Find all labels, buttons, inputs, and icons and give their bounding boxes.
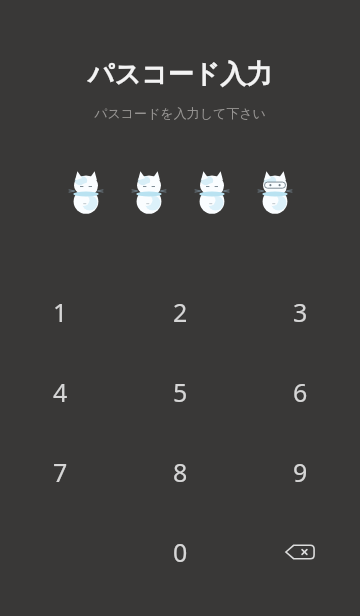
button[interactable]: 1 xyxy=(0,272,120,352)
button[interactable]: 5 xyxy=(120,352,240,432)
button[interactable]: 7 xyxy=(0,432,120,512)
staticText: 5 xyxy=(173,375,188,409)
button[interactable]: 4 xyxy=(0,352,120,432)
staticText: パスコード入力 xyxy=(0,58,360,91)
staticText: 0 xyxy=(173,535,188,569)
staticText: 7 xyxy=(53,455,68,489)
staticText: 6 xyxy=(293,375,308,409)
button[interactable]: 2 xyxy=(120,272,240,352)
staticText: 8 xyxy=(173,455,188,489)
staticText: 4 xyxy=(53,375,68,409)
staticText: 9 xyxy=(293,455,308,489)
button[interactable]: 8 xyxy=(120,432,240,512)
staticText: 2 xyxy=(173,295,188,329)
staticText: パスコードを入力して下さい xyxy=(0,105,360,121)
button[interactable]: Delete xyxy=(240,512,360,592)
button[interactable]: 6 xyxy=(240,352,360,432)
button[interactable]: 9 xyxy=(240,432,360,512)
staticText: 1 xyxy=(53,295,68,329)
staticText: 3 xyxy=(293,295,308,329)
button[interactable]: 0 xyxy=(120,512,240,592)
button[interactable]: 3 xyxy=(240,272,360,352)
